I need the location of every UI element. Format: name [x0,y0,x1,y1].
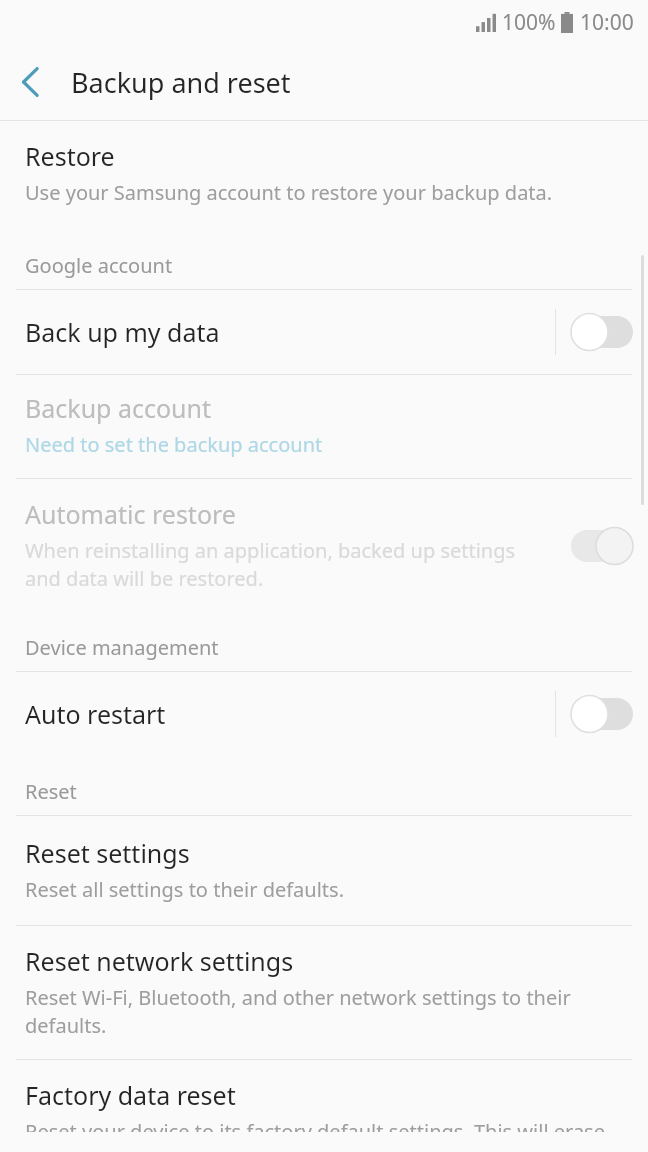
staticText: Auto restart [25,697,166,731]
staticText: Reset Wi-Fi, Bluetooth, and other networ… [25,984,571,1039]
staticText: Reset your device to its factory default… [25,1118,605,1132]
staticText: Device management [25,634,219,661]
button[interactable]: Backup account [0,375,648,478]
button[interactable]: Back up my data [0,290,648,374]
button[interactable]: Reset network settings [0,926,648,1059]
button[interactable]: Restore [0,121,648,228]
staticText: Reset [25,778,77,805]
staticText: Need to set the backup account [25,431,323,458]
staticText: Reset all settings to their defaults. [25,876,344,903]
button[interactable]: Reset settings [0,816,648,925]
staticText: Automatic restore [25,497,236,531]
staticText: Back up my data [25,315,220,349]
button[interactable]: Auto restart [0,672,648,756]
staticText: Reset network settings [25,944,294,978]
staticText: Reset settings [25,836,190,870]
staticText: 100% [502,8,556,37]
staticText: Backup and reset [71,64,291,101]
staticText: Backup account [25,391,212,425]
button[interactable]: Back [0,51,62,113]
staticText: 10:00 [580,8,634,37]
staticText: Use your Samsung account to restore your… [25,179,553,206]
button[interactable]: Factory data reset [0,1060,648,1152]
staticText: When reinstalling an application, backed… [25,537,516,592]
button[interactable]: Automatic restore [0,479,648,612]
staticText: Restore [25,139,115,173]
staticText: Google account [25,252,173,279]
staticText: Factory data reset [25,1078,236,1112]
